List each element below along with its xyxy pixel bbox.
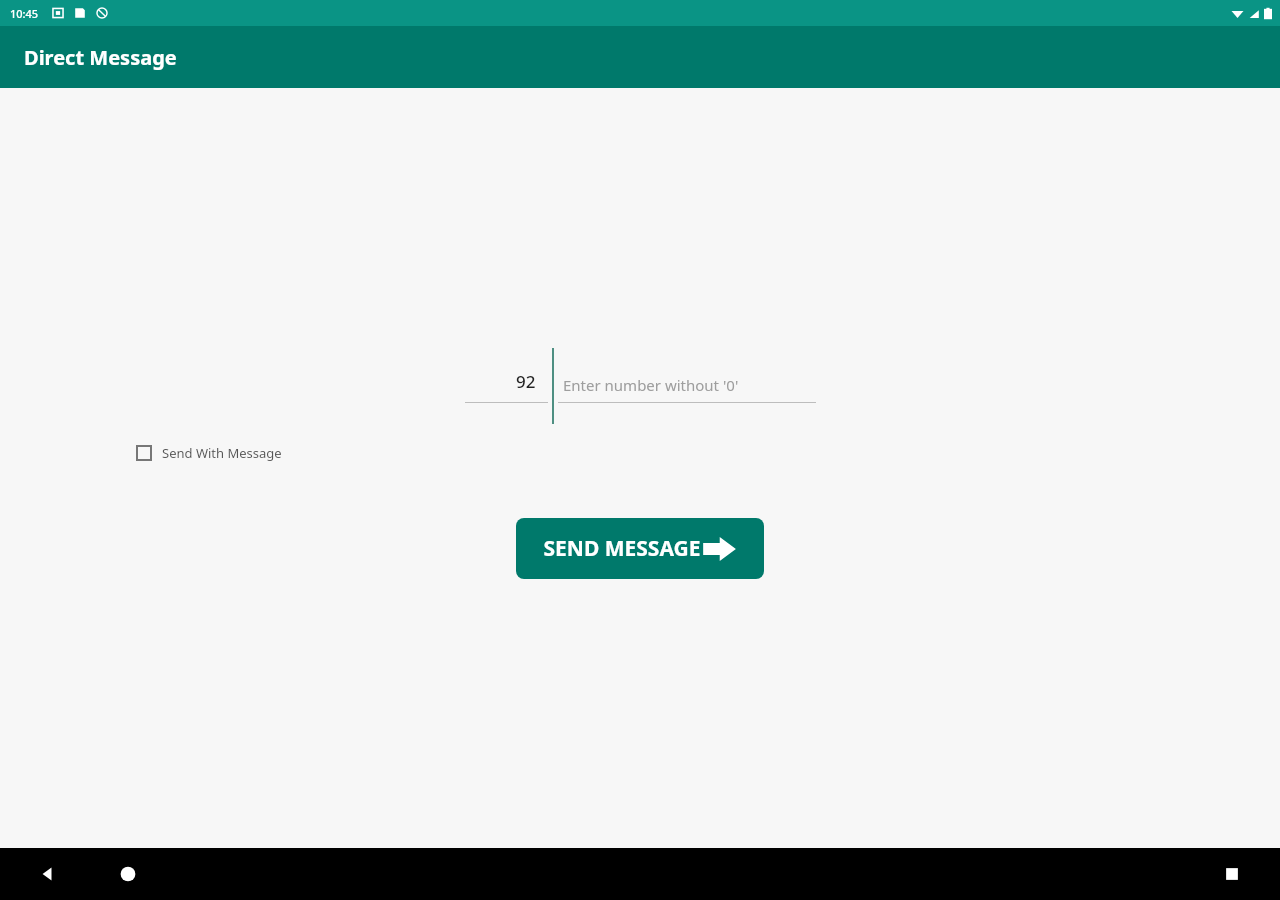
staticText: Direct Message [24,44,177,71]
staticText: SEND MESSAGE [543,534,701,563]
staticText: Enter number without '0' [563,375,739,395]
staticText: 10:45 [10,6,39,21]
staticText: Send With Message [162,444,282,462]
staticText: 92 [516,370,536,393]
button[interactable]: Back [26,852,70,896]
button[interactable]: Enter number without '0' [558,348,816,403]
button[interactable]: Recent apps [1210,852,1254,896]
button[interactable]: 92 [465,348,548,403]
button[interactable]: Send With Message [130,438,290,468]
button[interactable]: SEND MESSAGE [516,518,764,579]
other: Send [701,534,737,564]
button[interactable]: Home [106,852,150,896]
